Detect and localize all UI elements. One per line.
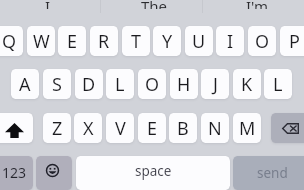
button[interactable]: O — [138, 69, 166, 99]
button[interactable]: R — [90, 26, 118, 56]
staticText: B — [177, 116, 189, 141]
button[interactable]: O — [248, 26, 276, 56]
button[interactable]: V — [106, 113, 134, 143]
button[interactable]: T — [122, 26, 150, 56]
staticText: O — [255, 29, 270, 54]
staticText: send — [257, 164, 288, 182]
button[interactable]: X — [74, 113, 102, 143]
button[interactable]: 123 — [0, 156, 33, 190]
staticText: L — [273, 72, 283, 97]
staticText: I — [45, 0, 51, 9]
button[interactable]: Backspace — [271, 113, 304, 143]
button[interactable]: E — [58, 26, 86, 56]
button[interactable]: L — [106, 69, 134, 99]
button[interactable]: I'm — [203, 0, 304, 13]
staticText: M — [239, 116, 256, 141]
staticText: I'm — [246, 0, 269, 9]
staticText: The — [141, 0, 168, 9]
button[interactable]: Q — [0, 26, 23, 56]
staticText: V — [115, 116, 126, 141]
button[interactable]: K — [233, 69, 261, 99]
button[interactable]: The — [101, 0, 202, 13]
button[interactable]: W — [27, 26, 55, 56]
staticText: S — [52, 72, 62, 97]
button[interactable]: D — [75, 69, 103, 99]
button[interactable]: Shift — [0, 113, 33, 143]
staticText: Q — [2, 29, 17, 54]
staticText: K — [241, 72, 253, 97]
button[interactable]: J — [201, 69, 229, 99]
button[interactable]: B — [169, 113, 197, 143]
staticText: Z — [52, 116, 63, 141]
button[interactable]: Z — [43, 113, 71, 143]
button[interactable]: U — [185, 26, 213, 56]
button[interactable]: send — [233, 156, 304, 190]
staticText: D — [82, 72, 96, 97]
staticText: I — [227, 29, 234, 54]
staticText: N — [208, 116, 222, 141]
staticText: U — [192, 29, 206, 54]
staticText: R — [98, 29, 110, 54]
button[interactable]: space — [76, 156, 230, 190]
button[interactable]: I — [0, 0, 100, 13]
staticText: X — [83, 116, 94, 141]
button[interactable]: Emoji keyboard — [36, 156, 72, 190]
staticText: H — [177, 72, 191, 97]
staticText: P — [289, 29, 300, 54]
button[interactable]: L — [264, 69, 292, 99]
staticText: E — [147, 116, 158, 141]
button[interactable]: N — [201, 113, 229, 143]
staticText: Y — [162, 29, 173, 54]
staticText: O — [145, 72, 160, 97]
staticText: J — [213, 72, 218, 97]
staticText: A — [19, 72, 31, 97]
staticText: 123 — [2, 163, 27, 182]
button[interactable]: Y — [153, 26, 181, 56]
staticText: T — [131, 29, 142, 54]
button[interactable]: S — [43, 69, 71, 99]
staticText: space — [135, 162, 172, 180]
button[interactable]: H — [170, 69, 198, 99]
button[interactable]: I — [216, 26, 244, 56]
button[interactable]: A — [11, 69, 39, 99]
staticText: L — [115, 72, 125, 97]
button[interactable]: P — [280, 26, 304, 56]
button[interactable]: E — [138, 113, 166, 143]
staticText: W — [33, 29, 50, 54]
button[interactable]: M — [233, 113, 261, 143]
staticText: E — [67, 29, 78, 54]
